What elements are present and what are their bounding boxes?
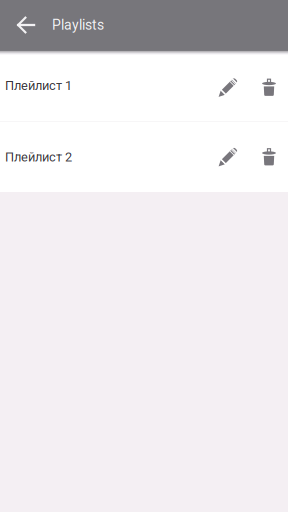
- button[interactable]: Delete playlist: [250, 50, 288, 121]
- button[interactable]: Edit playlist: [208, 50, 250, 121]
- staticText: Плейлист 2: [5, 149, 72, 164]
- staticText: Плейлист 1: [5, 78, 72, 93]
- staticText: Playlists: [52, 17, 104, 33]
- button[interactable]: Delete playlist: [250, 122, 288, 192]
- button[interactable]: Edit playlist: [208, 122, 250, 192]
- button[interactable]: Back: [0, 0, 52, 50]
